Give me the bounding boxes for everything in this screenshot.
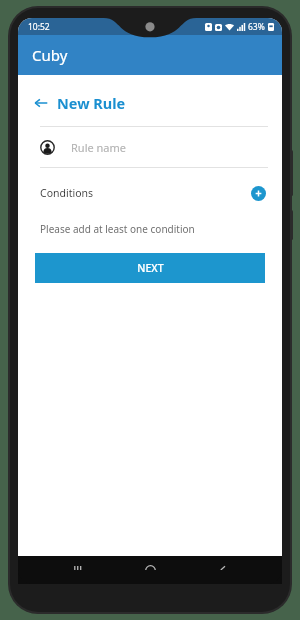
staticText: Cuby	[32, 45, 68, 65]
button[interactable]: Recent apps	[65, 557, 91, 583]
staticText: Please add at least one condition	[40, 222, 195, 236]
button[interactable]: Back	[18, 87, 282, 119]
button[interactable]: Home	[137, 557, 163, 583]
button[interactable]: Back	[210, 557, 236, 583]
button[interactable]: NEXT	[35, 253, 265, 283]
staticText: NEXT	[137, 261, 164, 275]
staticText: 63%	[248, 21, 265, 33]
button[interactable]: Rule name	[18, 127, 282, 167]
staticText: Conditions	[40, 186, 94, 200]
staticText: 10:52	[28, 21, 50, 33]
staticText: Rule name	[71, 140, 126, 155]
other: Back	[32, 94, 50, 112]
staticText: New Rule	[57, 93, 126, 113]
button[interactable]: Add condition	[251, 186, 266, 201]
